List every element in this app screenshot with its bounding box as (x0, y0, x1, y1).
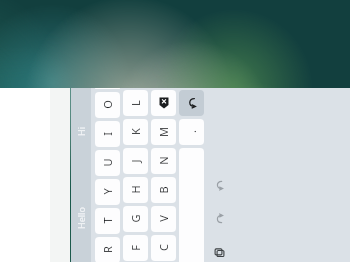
staticText: T (100, 217, 115, 224)
button[interactable]: L (123, 90, 148, 116)
button[interactable]: F (123, 235, 148, 261)
staticText: K (128, 128, 143, 135)
button[interactable]: T (95, 208, 120, 234)
button[interactable]: O (95, 92, 120, 118)
staticText: Hi (75, 127, 87, 136)
staticText: H (128, 185, 143, 194)
button[interactable]: Enter (179, 90, 204, 116)
button[interactable]: C (151, 235, 176, 261)
button[interactable]: N (151, 148, 176, 174)
button[interactable]: . (179, 119, 204, 145)
staticText: L (128, 100, 143, 106)
button[interactable]: H (123, 177, 148, 203)
button[interactable]: V (151, 206, 176, 232)
button[interactable]: Hello (71, 175, 91, 262)
staticText: O (100, 100, 115, 109)
staticText: Hello (75, 207, 87, 229)
button[interactable]: Undo (211, 211, 227, 227)
staticText: J (128, 159, 143, 163)
staticText: . (184, 130, 199, 133)
button[interactable]: I (95, 121, 120, 147)
button[interactable]: Clipboard (211, 245, 227, 261)
staticText: R (100, 246, 115, 253)
button[interactable]: K (123, 119, 148, 145)
staticText: G (128, 214, 143, 223)
staticText: C (156, 244, 171, 251)
button[interactable]: Redo (211, 177, 227, 193)
button[interactable]: Y (95, 179, 120, 205)
staticText: B (156, 186, 171, 194)
staticText: F (128, 245, 143, 251)
button[interactable]: Hi (71, 88, 91, 175)
button[interactable]: Backspace (151, 90, 176, 116)
staticText: Y (100, 188, 115, 195)
staticText: I (100, 132, 115, 136)
button[interactable]: J (123, 148, 148, 174)
staticText: U (100, 158, 115, 167)
button[interactable]: G (123, 206, 148, 232)
button[interactable]: B (151, 177, 176, 203)
staticText: M (156, 127, 171, 137)
button[interactable]: M (151, 119, 176, 145)
staticText: V (156, 215, 171, 222)
button[interactable]: U (95, 150, 120, 176)
staticText: N (156, 156, 171, 165)
button[interactable]: R (95, 237, 120, 262)
